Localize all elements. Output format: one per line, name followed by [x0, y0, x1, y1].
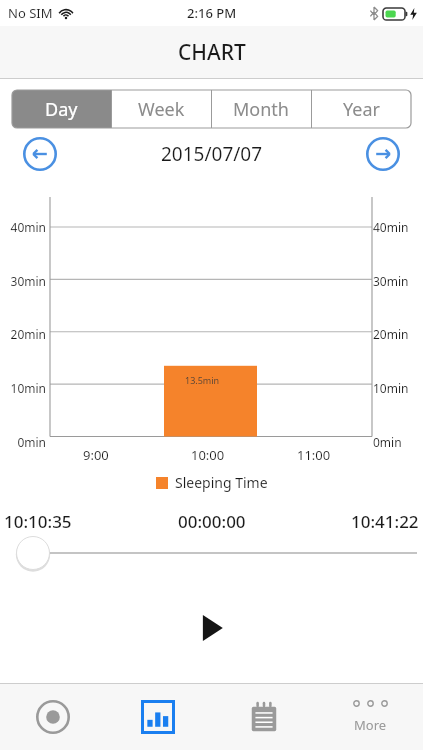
- staticText: 10min: [0, 380, 46, 396]
- staticText: More: [354, 716, 387, 734]
- staticText: Sleeping Time: [175, 473, 268, 492]
- button[interactable]: Previous day: [22, 136, 58, 172]
- button[interactable]: Notes: [211, 684, 317, 750]
- staticText: 30min: [373, 273, 419, 289]
- staticText: 40min: [373, 219, 419, 235]
- button[interactable]: Next day: [365, 136, 401, 172]
- staticText: 2015/07/07: [161, 141, 263, 167]
- staticText: No SIM: [8, 4, 53, 22]
- staticText: 0min: [0, 434, 46, 450]
- button[interactable]: Chart: [105, 684, 211, 750]
- staticText: 20min: [373, 326, 419, 342]
- button[interactable]: Play: [185, 601, 239, 655]
- staticText: 10:41:22: [351, 510, 419, 533]
- button[interactable]: [0, 533, 423, 573]
- staticText: 10:00: [191, 446, 225, 464]
- staticText: 13.5min: [185, 374, 220, 386]
- staticText: 2:16 PM: [187, 4, 237, 22]
- staticText: 40min: [0, 219, 46, 235]
- staticText: 20min: [0, 326, 46, 342]
- staticText: 9:00: [83, 446, 109, 464]
- staticText: Year: [343, 97, 380, 122]
- button[interactable]: Day: [12, 90, 111, 128]
- button[interactable]: Month: [211, 90, 311, 128]
- staticText: 10:10:35: [4, 510, 72, 533]
- staticText: Week: [138, 97, 185, 122]
- staticText: 10min: [373, 380, 419, 396]
- button[interactable]: Record: [0, 684, 105, 750]
- staticText: Month: [233, 97, 289, 122]
- button[interactable]: Week: [111, 90, 211, 128]
- button[interactable]: More: [317, 684, 423, 750]
- staticText: Day: [45, 97, 78, 122]
- staticText: 00:00:00: [178, 510, 246, 533]
- staticText: 11:00: [297, 446, 331, 464]
- staticText: 30min: [0, 273, 46, 289]
- button[interactable]: Year: [311, 90, 411, 128]
- staticText: CHART: [178, 38, 246, 67]
- staticText: 0min: [373, 434, 419, 450]
